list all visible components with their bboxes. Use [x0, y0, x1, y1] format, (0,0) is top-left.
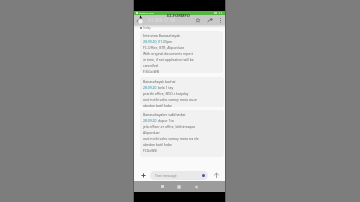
button[interactable]	[177, 185, 181, 189]
button[interactable]	[194, 15, 202, 25]
staticText: asol nothi soho somoy moto na ele	[143, 136, 199, 142]
staticText: Banasahayak bachai	[143, 79, 176, 85]
staticText: abedon batil hobe	[143, 103, 172, 107]
staticText: F.B.Go.WB	[143, 69, 159, 73]
staticText: EZ-FORMFO	[167, 13, 190, 18]
staticText: 28.09.20	[143, 85, 157, 90]
staticText: 31 369 31 56	[148, 17, 176, 23]
staticText: 0pm	[165, 39, 173, 44]
staticText: cancelled	[143, 63, 158, 69]
button[interactable]	[217, 15, 223, 25]
staticText: FC-Office, BTR, Alipurduar	[143, 45, 185, 51]
staticText: Alipurduar	[143, 130, 160, 136]
staticText: FCGoWB	[143, 148, 157, 154]
staticText: 28.09.20	[143, 118, 157, 123]
staticText: Text message	[155, 173, 177, 178]
button[interactable]	[141, 173, 146, 178]
button[interactable]: Interview Banasahayak	[140, 31, 223, 73]
staticText: dupur 1ta	[157, 118, 174, 123]
button[interactable]: Text message	[150, 171, 208, 180]
button[interactable]: Banasahayak bachai	[140, 77, 224, 107]
staticText: jela officer-er office, bibhinnapur	[143, 124, 196, 130]
staticText: With original documents report	[143, 51, 194, 57]
button[interactable]	[194, 185, 198, 189]
staticText: 28.09.20, 01.0	[143, 39, 165, 44]
button[interactable]: Banasahayaker sakkhatkar	[140, 110, 224, 157]
button[interactable]	[213, 172, 220, 179]
button[interactable]	[134, 15, 144, 25]
staticText: Today	[143, 26, 151, 30]
staticText: abedon batil hobe	[143, 142, 172, 148]
staticText: prarthi office, BDO-r karjalay	[143, 91, 189, 97]
staticText: Banasahayaker sakkhatkar	[143, 112, 186, 118]
button[interactable]	[207, 15, 213, 25]
staticText: Interview Banasahayak	[143, 33, 180, 39]
staticText: bela 1 tay	[157, 85, 174, 90]
staticText: asol nothi soho somoy moto asun	[143, 97, 197, 103]
staticText: in time, if not application will be	[143, 57, 194, 63]
staticText: Nokia 6.1 Plus	[139, 12, 154, 15]
